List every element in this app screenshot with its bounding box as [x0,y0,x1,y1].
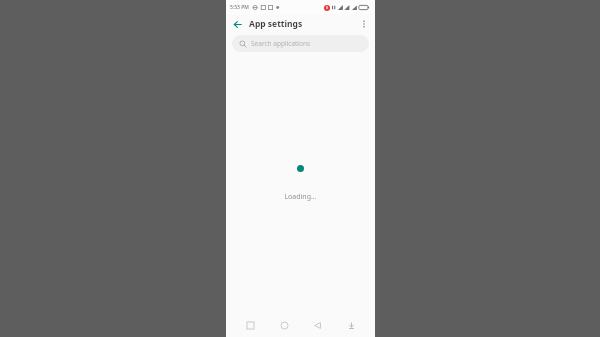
button[interactable]: Back [307,315,327,335]
button[interactable]: Home [274,315,294,335]
button[interactable]: Back [230,17,244,31]
button[interactable]: Hide keyboard [341,315,361,335]
staticText: Loading... [284,192,317,202]
staticText: App settings [249,18,303,30]
staticText: Search applications [251,39,311,48]
button[interactable]: Search applications [232,35,369,52]
button[interactable]: Recent apps [240,315,260,335]
button[interactable]: More options [357,17,371,31]
staticText: 5:53 PM [230,4,249,11]
